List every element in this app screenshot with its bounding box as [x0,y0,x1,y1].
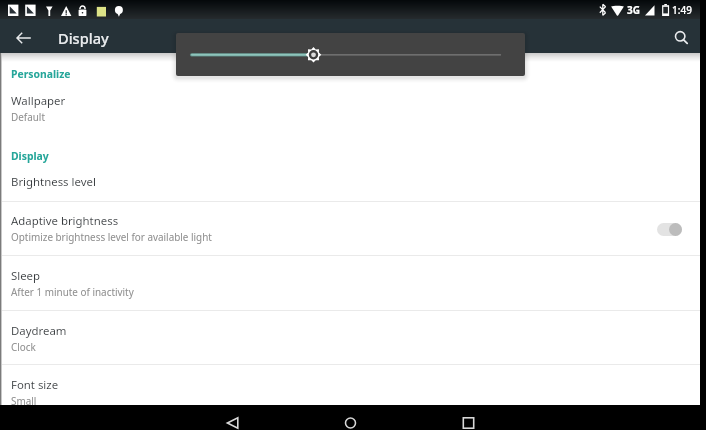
staticText: Personalize [11,67,71,81]
staticText: Daydream [11,323,67,339]
staticText: Adaptive brightness [11,213,119,229]
staticText: 1:49 [672,3,692,17]
staticText: Brightness level [11,174,96,190]
button[interactable]: Font size [0,364,700,407]
button[interactable]: Back [222,405,246,430]
button[interactable]: Brightness slider [176,33,525,76]
button[interactable]: Search [668,24,696,52]
button[interactable]: Sleep [0,255,700,310]
staticText: Clock [11,340,36,353]
button[interactable]: Home [339,405,363,430]
staticText: Wallpaper [11,93,66,109]
button[interactable]: Adaptive brightness toggle [657,223,682,236]
button[interactable]: Wallpaper [0,85,700,140]
staticText: Default [11,110,45,123]
button[interactable]: Back [9,24,37,52]
staticText: 3G [627,3,640,17]
button[interactable]: Recent apps [456,405,480,430]
staticText: Display [58,28,109,48]
button[interactable]: Daydream [0,310,700,364]
staticText: After 1 minute of inactivity [11,285,134,298]
button[interactable]: Adaptive brightness [0,201,700,255]
staticText: Font size [11,377,59,393]
staticText: Optimize brightness level for available … [11,230,212,243]
staticText: Small [11,394,37,407]
staticText: Display [11,149,49,163]
button[interactable]: Brightness level [0,166,700,201]
staticText: Sleep [11,268,41,284]
